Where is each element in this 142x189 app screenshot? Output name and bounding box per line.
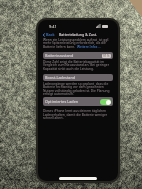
staticText: Batterie rechtzeitig vor dem gewohnten	[43, 85, 104, 89]
staticText: Ladevorgänge werden so geplant, dass die	[43, 82, 109, 86]
staticText: Diese Zahl zeigt die Batteriekapazität i…	[43, 60, 105, 64]
staticText: Dieses iPhone lernt aus deinem täglichen	[43, 109, 107, 113]
staticText: erfolgt automatisch.	[43, 92, 74, 96]
staticText: Ladeverhalten, damit die Batterie wenige…	[43, 113, 108, 117]
other: Optimiertes Laden toggle	[100, 99, 111, 105]
staticText: 9:41	[49, 24, 57, 29]
button[interactable]: Optimiertes Laden	[43, 97, 113, 106]
staticText: Vergleich zum Neuzustand an. Bei geringe…	[43, 63, 109, 67]
staticText: mehr Spitzenleistung erforderlich, als d…	[43, 41, 106, 45]
staticText: 97 %	[103, 54, 110, 58]
button[interactable]: Back	[43, 32, 57, 37]
staticText: Kapazität sinkt auch die Leistung.	[43, 67, 94, 71]
staticText: Batterieladung & Zust.	[59, 32, 97, 37]
staticText: Batteriezustand	[45, 53, 74, 58]
staticText: Boost-Ladestand	[45, 75, 76, 80]
staticText: Batterie liefern kann.	[43, 45, 76, 49]
staticText: Wenn ein Leistungsproblem auftrat, ist g…	[43, 38, 110, 42]
staticText: Back	[46, 32, 55, 37]
button[interactable]: Weitere Infos ...	[77, 45, 101, 49]
staticText: schnell altert.	[43, 116, 64, 120]
button[interactable]: Boost-Ladestand	[43, 74, 113, 81]
staticText: Optimiertes Laden	[45, 99, 79, 104]
staticText: Nutzen vollständig geladen ist. Die Plan…	[43, 89, 110, 93]
button[interactable]: Batteriezustand	[43, 52, 113, 59]
